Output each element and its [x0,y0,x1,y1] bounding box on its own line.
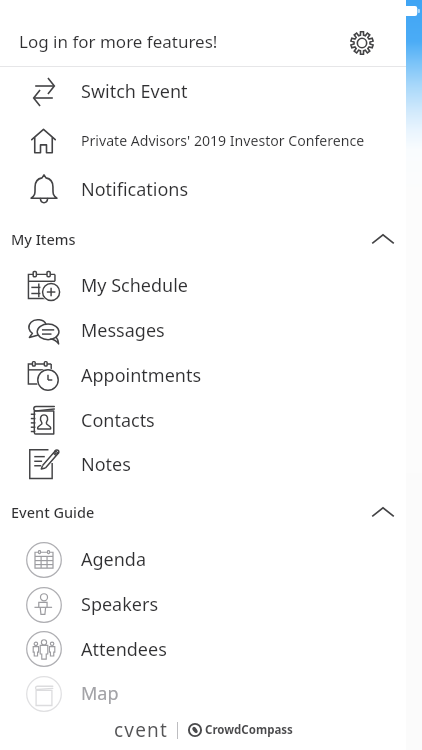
staticText: Private Advisors' 2019 Investor Conferen… [81,131,365,150]
staticText: Event Guide [11,502,95,522]
button[interactable]: Map [0,671,406,716]
staticText: Notifications [81,177,189,202]
staticText: My Schedule [81,273,188,298]
button[interactable]: Agenda [0,537,406,582]
button[interactable]: Switch Event [0,67,406,116]
button[interactable]: Appointments [0,353,406,398]
staticText: Switch Event [81,79,188,104]
button[interactable]: Private Advisors' 2019 Investor Conferen… [0,116,406,165]
staticText: Agenda [81,547,147,572]
button[interactable]: My Schedule [0,263,406,308]
button[interactable]: Messages [0,308,406,353]
staticText: Contacts [81,408,155,433]
button[interactable]: Contacts [0,398,406,442]
staticText: Messages [81,318,165,343]
staticText: Appointments [81,363,202,388]
staticText: cvent [114,717,169,743]
button[interactable]: Speakers [0,582,406,627]
staticText: Notes [81,452,131,477]
staticText: My Items [11,229,76,249]
staticText: Map [81,681,119,706]
button[interactable]: Notes [0,442,406,486]
button[interactable]: Notifications [0,165,406,214]
button[interactable]: My Items [0,214,406,263]
button[interactable]: Settings [350,31,374,55]
staticText: Speakers [81,592,159,617]
button[interactable]: Event Guide [0,486,406,537]
staticText: Log in for more features! [19,30,218,53]
staticText: CrowdCompass [205,722,293,738]
staticText: Attendees [81,637,167,662]
button[interactable]: Attendees [0,627,406,671]
